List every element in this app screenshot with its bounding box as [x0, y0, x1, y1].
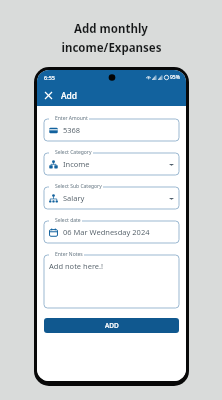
staticText: 6:55 [44, 74, 55, 81]
button[interactable]: 5368 [44, 119, 179, 141]
button[interactable]: ADD [44, 318, 179, 333]
button[interactable]: 06 Mar Wednesday 2024 [44, 221, 179, 243]
staticText: 5368 [63, 125, 81, 135]
button[interactable]: Income [44, 153, 179, 175]
staticText: Enter Notes [55, 251, 83, 258]
button[interactable]: Add note here.! [44, 255, 179, 308]
staticText: 95% [170, 74, 180, 81]
staticText: Add note here.! [49, 261, 104, 271]
button[interactable]: Close [41, 88, 56, 103]
staticText: Select Category [55, 149, 92, 156]
button[interactable]: Salary [44, 187, 179, 209]
staticText: Add [61, 90, 78, 102]
staticText: ADD [105, 321, 119, 330]
staticText: Income [63, 159, 90, 169]
staticText: Select Sub Category [55, 183, 102, 190]
staticText: Enter Amount [55, 115, 88, 122]
staticText: Add monthly [74, 21, 148, 37]
staticText: Salary [63, 193, 85, 203]
staticText: income/Expanses [61, 40, 162, 56]
staticText: Select date [55, 217, 81, 224]
staticText: 06 Mar Wednesday 2024 [63, 227, 150, 237]
